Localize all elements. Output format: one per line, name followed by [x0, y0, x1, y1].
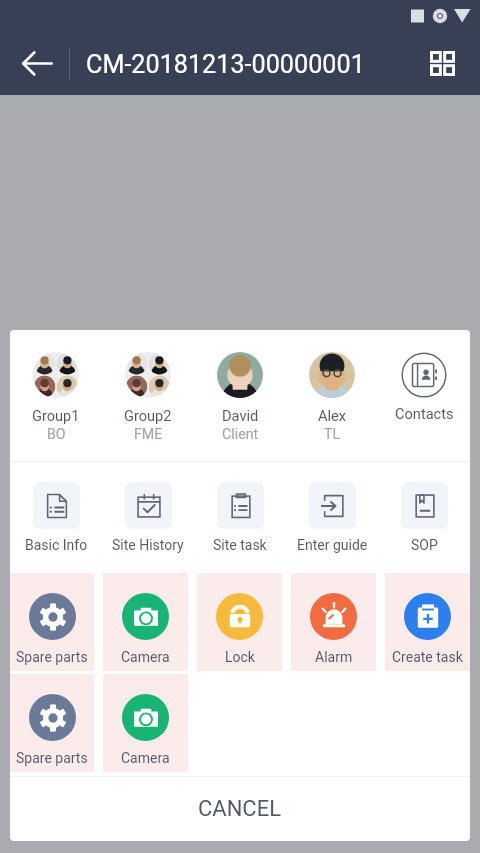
staticText: David: [222, 407, 259, 424]
staticText: TL: [324, 426, 341, 443]
button[interactable]: Grid menu: [406, 32, 480, 95]
button[interactable]: Lock: [197, 573, 282, 671]
button[interactable]: David: [194, 352, 286, 443]
button[interactable]: CANCEL: [10, 777, 470, 841]
staticText: Spare parts: [16, 750, 88, 766]
staticText: Group1: [32, 407, 80, 424]
button[interactable]: Site task: [194, 482, 286, 553]
staticText: Spare parts: [16, 649, 88, 665]
staticText: Group2: [124, 407, 172, 424]
staticText: Alex: [318, 407, 347, 424]
button[interactable]: Spare parts: [10, 573, 94, 671]
staticText: Camera: [121, 750, 170, 766]
staticText: Basic Info: [25, 537, 88, 553]
staticText: BO: [47, 426, 66, 443]
button[interactable]: Basic Info: [10, 482, 102, 553]
button[interactable]: Enter guide: [286, 482, 378, 553]
button[interactable]: SOP: [378, 482, 470, 553]
button[interactable]: Create task: [385, 573, 470, 671]
staticText: Create task: [392, 649, 463, 665]
staticText: Lock: [225, 649, 255, 665]
staticText: Alarm: [315, 649, 353, 665]
staticText: FME: [134, 426, 163, 443]
staticText: Site History: [112, 537, 184, 553]
button[interactable]: Site History: [102, 482, 194, 553]
button[interactable]: Alex: [286, 352, 378, 443]
staticText: CM-20181213-00000001: [86, 50, 365, 80]
button[interactable]: Camera: [103, 674, 188, 772]
button[interactable]: Group2: [102, 352, 194, 443]
staticText: Contacts: [395, 405, 454, 422]
button[interactable]: Spare parts: [10, 674, 94, 772]
staticText: CANCEL: [198, 796, 282, 822]
staticText: Site task: [213, 537, 267, 553]
staticText: Camera: [121, 649, 170, 665]
staticText: Enter guide: [297, 537, 368, 553]
button[interactable]: Alarm: [291, 573, 376, 671]
staticText: Client: [222, 426, 259, 443]
staticText: SOP: [411, 537, 438, 553]
button[interactable]: Contacts: [378, 352, 470, 422]
button[interactable]: Back: [0, 32, 69, 95]
button[interactable]: Group1: [10, 352, 102, 443]
button[interactable]: Camera: [103, 573, 188, 671]
